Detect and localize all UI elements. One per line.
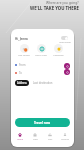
staticText: Cars <box>48 138 53 141</box>
button[interactable]: Address <box>15 80 29 86</box>
button[interactable]: Toggle mode <box>61 36 68 40</box>
button[interactable]: To <box>15 70 59 75</box>
button[interactable]: From <box>15 62 59 67</box>
button[interactable]: Trips <box>28 133 42 141</box>
staticText: Calendars <box>53 54 64 57</box>
staticText: Address <box>17 81 27 85</box>
staticText: Taxi service <box>18 54 30 57</box>
staticText: Account <box>61 138 69 141</box>
staticText: Travel now <box>34 121 51 125</box>
staticText: To <box>19 71 22 75</box>
button[interactable]: Home <box>13 133 27 141</box>
staticText: Home <box>17 138 23 141</box>
staticText: Where are you going? <box>46 1 79 5</box>
button[interactable]: Locate me <box>64 63 70 69</box>
button[interactable]: Cars <box>43 133 57 141</box>
button[interactable]: Taxi service <box>16 44 32 57</box>
button[interactable]: Travel now <box>15 118 70 127</box>
staticText: Trips <box>33 138 38 141</box>
staticText: Hi, Jenna <box>15 37 28 41</box>
button[interactable]: Account <box>58 133 72 141</box>
button[interactable]: Tours a day <box>33 44 49 57</box>
staticText: Tours a day <box>35 54 47 57</box>
staticText: Last destination <box>33 81 53 85</box>
staticText: WE'LL TAKE YOU THERE <box>30 5 79 11</box>
staticText: Night mode <box>59 41 71 44</box>
button[interactable]: Calendars <box>50 44 66 57</box>
staticText: From <box>19 63 26 67</box>
button[interactable]: Swap <box>64 69 70 75</box>
